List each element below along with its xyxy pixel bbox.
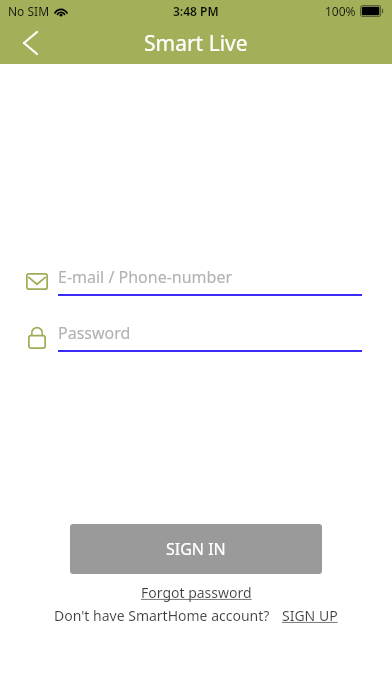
staticText: SIGN IN <box>166 538 226 560</box>
button[interactable]: SIGN UP <box>282 606 338 625</box>
button[interactable]: SIGN IN <box>70 524 322 574</box>
staticText: Forgot password <box>141 583 252 602</box>
button[interactable]: Back <box>8 22 52 64</box>
staticText: No SIM <box>8 3 50 19</box>
staticText: Smart Live <box>144 29 248 58</box>
staticText: Password <box>58 322 131 344</box>
staticText: SIGN UP <box>282 606 338 625</box>
staticText: 100% <box>325 3 356 19</box>
button[interactable]: Email or phone number <box>24 266 362 296</box>
staticText: 3:48 PM <box>173 3 219 19</box>
staticText: E-mail / Phone-number <box>58 266 233 288</box>
staticText: Don't have SmartHome account? <box>54 606 270 625</box>
button[interactable]: Forgot password <box>141 583 252 602</box>
button[interactable]: Password <box>24 322 362 352</box>
